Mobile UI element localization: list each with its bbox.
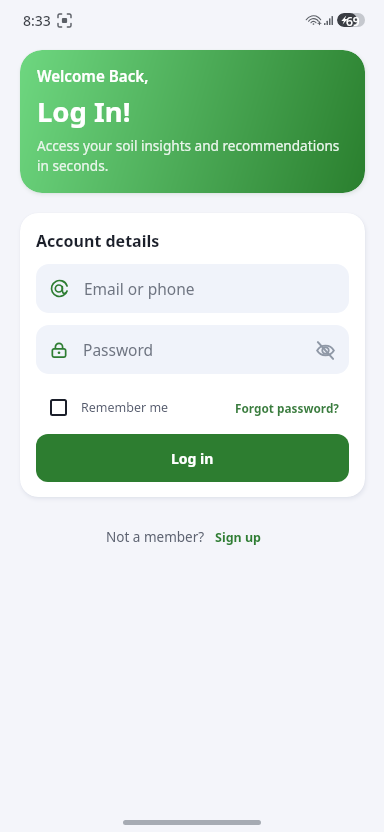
staticText: Forgot password? — [235, 400, 339, 416]
button[interactable]: Log in — [36, 434, 349, 482]
staticText: Password — [83, 339, 154, 360]
staticText: Log in — [171, 449, 214, 468]
staticText: Sign up — [215, 529, 261, 546]
button[interactable]: Forgot password? — [235, 400, 339, 416]
staticText: Remember me — [81, 399, 169, 416]
staticText: Access your soil insights and recommenda… — [37, 136, 345, 175]
button[interactable]: Sign up — [215, 529, 261, 546]
button[interactable]: Password — [36, 325, 349, 374]
button[interactable]: Remember me — [50, 399, 169, 416]
staticText: Not a member? — [106, 528, 205, 546]
staticText: Email or phone — [84, 278, 195, 299]
staticText: Account details — [36, 230, 160, 252]
staticText: 8:33 — [23, 11, 51, 30]
staticText: Log In! — [37, 93, 131, 130]
button[interactable]: Email or phone — [36, 264, 349, 313]
staticText: Welcome Back, — [37, 66, 149, 87]
button[interactable]: Show password — [313, 338, 337, 362]
staticText: 69 — [346, 13, 360, 27]
